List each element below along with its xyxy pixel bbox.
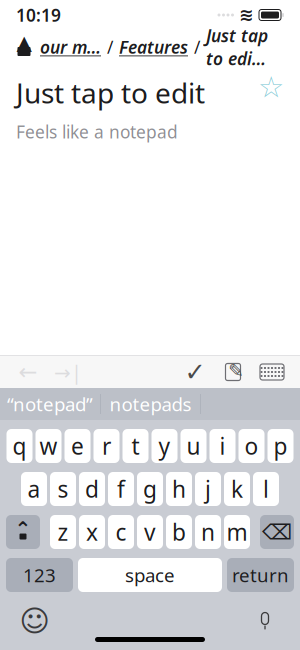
button[interactable]: r <box>93 429 119 463</box>
staticText: z <box>57 517 68 547</box>
button[interactable]: e <box>64 429 90 463</box>
button[interactable]: b <box>166 515 192 549</box>
staticText: ⌫ <box>262 520 292 544</box>
staticText: a <box>27 474 40 504</box>
staticText: u <box>186 431 200 461</box>
staticText: t <box>131 431 139 461</box>
button[interactable]: f <box>108 472 134 506</box>
button[interactable]: Edit <box>214 357 252 387</box>
button[interactable]: Hide keyboard <box>252 357 292 387</box>
staticText: ✓ <box>184 358 205 386</box>
button[interactable]: c <box>108 515 134 549</box>
button[interactable]: Emoji <box>18 604 52 638</box>
button[interactable]: return <box>227 558 294 592</box>
button[interactable]: u <box>180 429 206 463</box>
staticText: Just tap to edit <box>16 74 205 111</box>
staticText: Features <box>119 35 188 58</box>
button[interactable]: our m… <box>40 35 101 58</box>
staticText: return <box>232 563 289 587</box>
staticText: p <box>273 431 287 461</box>
button[interactable]: g <box>137 472 163 506</box>
button[interactable]: y <box>151 429 177 463</box>
button[interactable]: w <box>35 429 61 463</box>
staticText: Just tap to edi… <box>206 24 268 70</box>
button[interactable]: Dictation <box>248 604 282 638</box>
staticText: h <box>172 474 186 504</box>
button[interactable]: Home <box>14 37 34 57</box>
button[interactable]: n <box>195 515 221 549</box>
button[interactable]: space <box>78 558 222 592</box>
button[interactable]: Favorite <box>258 74 284 100</box>
staticText: b <box>172 517 186 547</box>
button[interactable]: k <box>224 472 250 506</box>
staticText: ≋ <box>239 5 254 25</box>
button[interactable]: t <box>122 429 148 463</box>
staticText: y <box>158 431 170 461</box>
staticText: g <box>143 474 157 504</box>
staticText: 10:19 <box>16 3 61 26</box>
button[interactable]: Previous field <box>8 357 48 387</box>
staticText: ☆ <box>258 70 284 104</box>
staticText: 123 <box>23 563 56 587</box>
button[interactable]: Next field <box>48 357 88 387</box>
staticText: our m… <box>40 35 101 58</box>
button[interactable]: h <box>166 472 192 506</box>
staticText: o <box>244 431 258 461</box>
button[interactable]: o <box>238 429 264 463</box>
staticText: x <box>86 517 98 547</box>
button[interactable]: i <box>209 429 235 463</box>
staticText: c <box>115 517 126 547</box>
staticText: v <box>144 517 156 547</box>
button[interactable]: d <box>79 472 105 506</box>
button[interactable]: notepads <box>101 388 200 420</box>
staticText: / <box>107 35 113 58</box>
staticText: “notepad” <box>7 392 93 416</box>
staticText: ✎ <box>228 360 244 382</box>
button[interactable]: v <box>137 515 163 549</box>
staticText: ▲ <box>16 31 31 54</box>
staticText: e <box>71 431 84 461</box>
button[interactable]: Delete <box>260 515 294 549</box>
staticText: k <box>231 474 243 504</box>
staticText: notepads <box>109 392 191 416</box>
button[interactable]: j <box>195 472 221 506</box>
staticText: i <box>219 431 225 461</box>
button[interactable]: Features <box>119 35 188 58</box>
button[interactable]: p <box>267 429 293 463</box>
staticText: s <box>57 474 68 504</box>
button[interactable]: 123 <box>6 558 73 592</box>
button[interactable]: a <box>21 472 47 506</box>
staticText: →| <box>54 359 82 385</box>
staticText: space <box>125 563 175 587</box>
staticText: j <box>205 474 211 504</box>
staticText: n <box>201 517 215 547</box>
button[interactable]: Shift <box>6 515 40 549</box>
button[interactable]: x <box>79 515 105 549</box>
staticText: r <box>102 431 111 461</box>
button[interactable]: q <box>6 429 32 463</box>
staticText: l <box>263 474 269 504</box>
button[interactable]: m <box>224 515 250 549</box>
button[interactable]: s <box>50 472 76 506</box>
staticText: q <box>12 431 26 461</box>
button[interactable]: z <box>50 515 76 549</box>
button[interactable]: l <box>253 472 279 506</box>
staticText: d <box>85 474 99 504</box>
staticText: ☺ <box>19 604 50 638</box>
staticText: m <box>226 517 247 547</box>
staticText: f <box>117 474 125 504</box>
button[interactable]: “notepad” <box>0 388 100 420</box>
staticText: ⌃ <box>14 518 31 540</box>
staticText: ← <box>18 359 37 385</box>
staticText: w <box>39 431 57 461</box>
staticText: Feels like a notepad <box>16 120 178 143</box>
button[interactable]: Done <box>176 357 214 387</box>
staticText: / <box>194 35 200 58</box>
